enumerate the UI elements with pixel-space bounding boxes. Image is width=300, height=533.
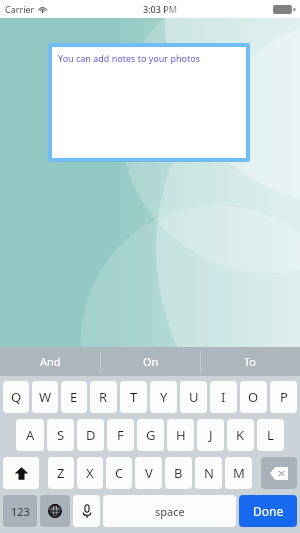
staticText: G bbox=[146, 426, 156, 444]
staticText: T bbox=[130, 388, 138, 406]
staticText: 3:03 PM bbox=[143, 3, 177, 15]
staticText: X bbox=[86, 464, 94, 482]
staticText: R bbox=[99, 388, 108, 406]
staticText: D bbox=[86, 426, 96, 444]
button[interactable]: W bbox=[32, 381, 58, 413]
staticText: To bbox=[244, 354, 257, 369]
button[interactable]: F bbox=[107, 419, 134, 451]
staticText: B bbox=[174, 464, 183, 482]
button[interactable]: A bbox=[16, 419, 44, 451]
button[interactable]: Y bbox=[150, 381, 177, 413]
button[interactable]: 123 bbox=[3, 495, 37, 527]
button[interactable]: space bbox=[103, 495, 236, 527]
button[interactable]: P bbox=[270, 381, 297, 413]
staticText: E bbox=[70, 388, 78, 406]
staticText: F bbox=[117, 426, 124, 444]
button[interactable]: H bbox=[167, 419, 194, 451]
button[interactable]: N bbox=[195, 457, 222, 489]
staticText: space bbox=[155, 504, 185, 519]
staticText: And bbox=[40, 354, 61, 369]
button[interactable]: On bbox=[101, 347, 200, 376]
button[interactable]: O bbox=[240, 381, 267, 413]
staticText: Done bbox=[253, 503, 284, 519]
button[interactable]: Backspace bbox=[261, 457, 297, 489]
button[interactable]: E bbox=[61, 381, 87, 413]
button[interactable]: Shift bbox=[3, 457, 39, 489]
staticText: S bbox=[57, 426, 65, 444]
button[interactable]: R bbox=[90, 381, 117, 413]
button[interactable]: V bbox=[135, 457, 162, 489]
button[interactable]: B bbox=[165, 457, 192, 489]
staticText: C bbox=[115, 464, 124, 482]
button[interactable]: D bbox=[77, 419, 104, 451]
staticText: U bbox=[189, 388, 199, 406]
button[interactable]: You can add notes to your photos bbox=[52, 47, 246, 158]
button[interactable]: Q bbox=[3, 381, 29, 413]
staticText: H bbox=[176, 426, 186, 444]
button[interactable]: C bbox=[106, 457, 132, 489]
button[interactable]: T bbox=[120, 381, 147, 413]
staticText: O bbox=[248, 388, 259, 406]
button[interactable]: X bbox=[77, 457, 103, 489]
button[interactable]: L bbox=[257, 419, 284, 451]
staticText: Y bbox=[160, 388, 168, 406]
button[interactable]: J bbox=[197, 419, 224, 451]
button[interactable]: M bbox=[225, 457, 252, 489]
staticText: M bbox=[233, 464, 245, 482]
staticText: I bbox=[221, 388, 226, 406]
staticText: A bbox=[26, 426, 35, 444]
button[interactable]: To bbox=[201, 347, 300, 376]
staticText: 123 bbox=[11, 504, 30, 519]
button[interactable]: Done bbox=[239, 495, 297, 527]
button[interactable]: G bbox=[137, 419, 164, 451]
staticText: W bbox=[39, 388, 52, 406]
button[interactable]: K bbox=[227, 419, 254, 451]
button[interactable]: S bbox=[47, 419, 74, 451]
staticText: L bbox=[267, 426, 274, 444]
button[interactable]: I bbox=[210, 381, 237, 413]
button[interactable]: Next keyboard bbox=[40, 495, 70, 527]
staticText: Carrier bbox=[5, 3, 35, 15]
button[interactable]: Z bbox=[48, 457, 74, 489]
staticText: Q bbox=[11, 388, 22, 406]
staticText: P bbox=[280, 388, 288, 406]
staticText: You can add notes to your photos bbox=[58, 52, 200, 64]
staticText: Z bbox=[57, 464, 65, 482]
staticText: K bbox=[236, 426, 245, 444]
staticText: J bbox=[209, 426, 213, 444]
staticText: V bbox=[145, 464, 153, 482]
staticText: N bbox=[204, 464, 214, 482]
button[interactable]: And bbox=[0, 347, 100, 376]
button[interactable]: U bbox=[180, 381, 207, 413]
staticText: On bbox=[143, 354, 159, 369]
button[interactable]: Dictate bbox=[73, 495, 100, 527]
